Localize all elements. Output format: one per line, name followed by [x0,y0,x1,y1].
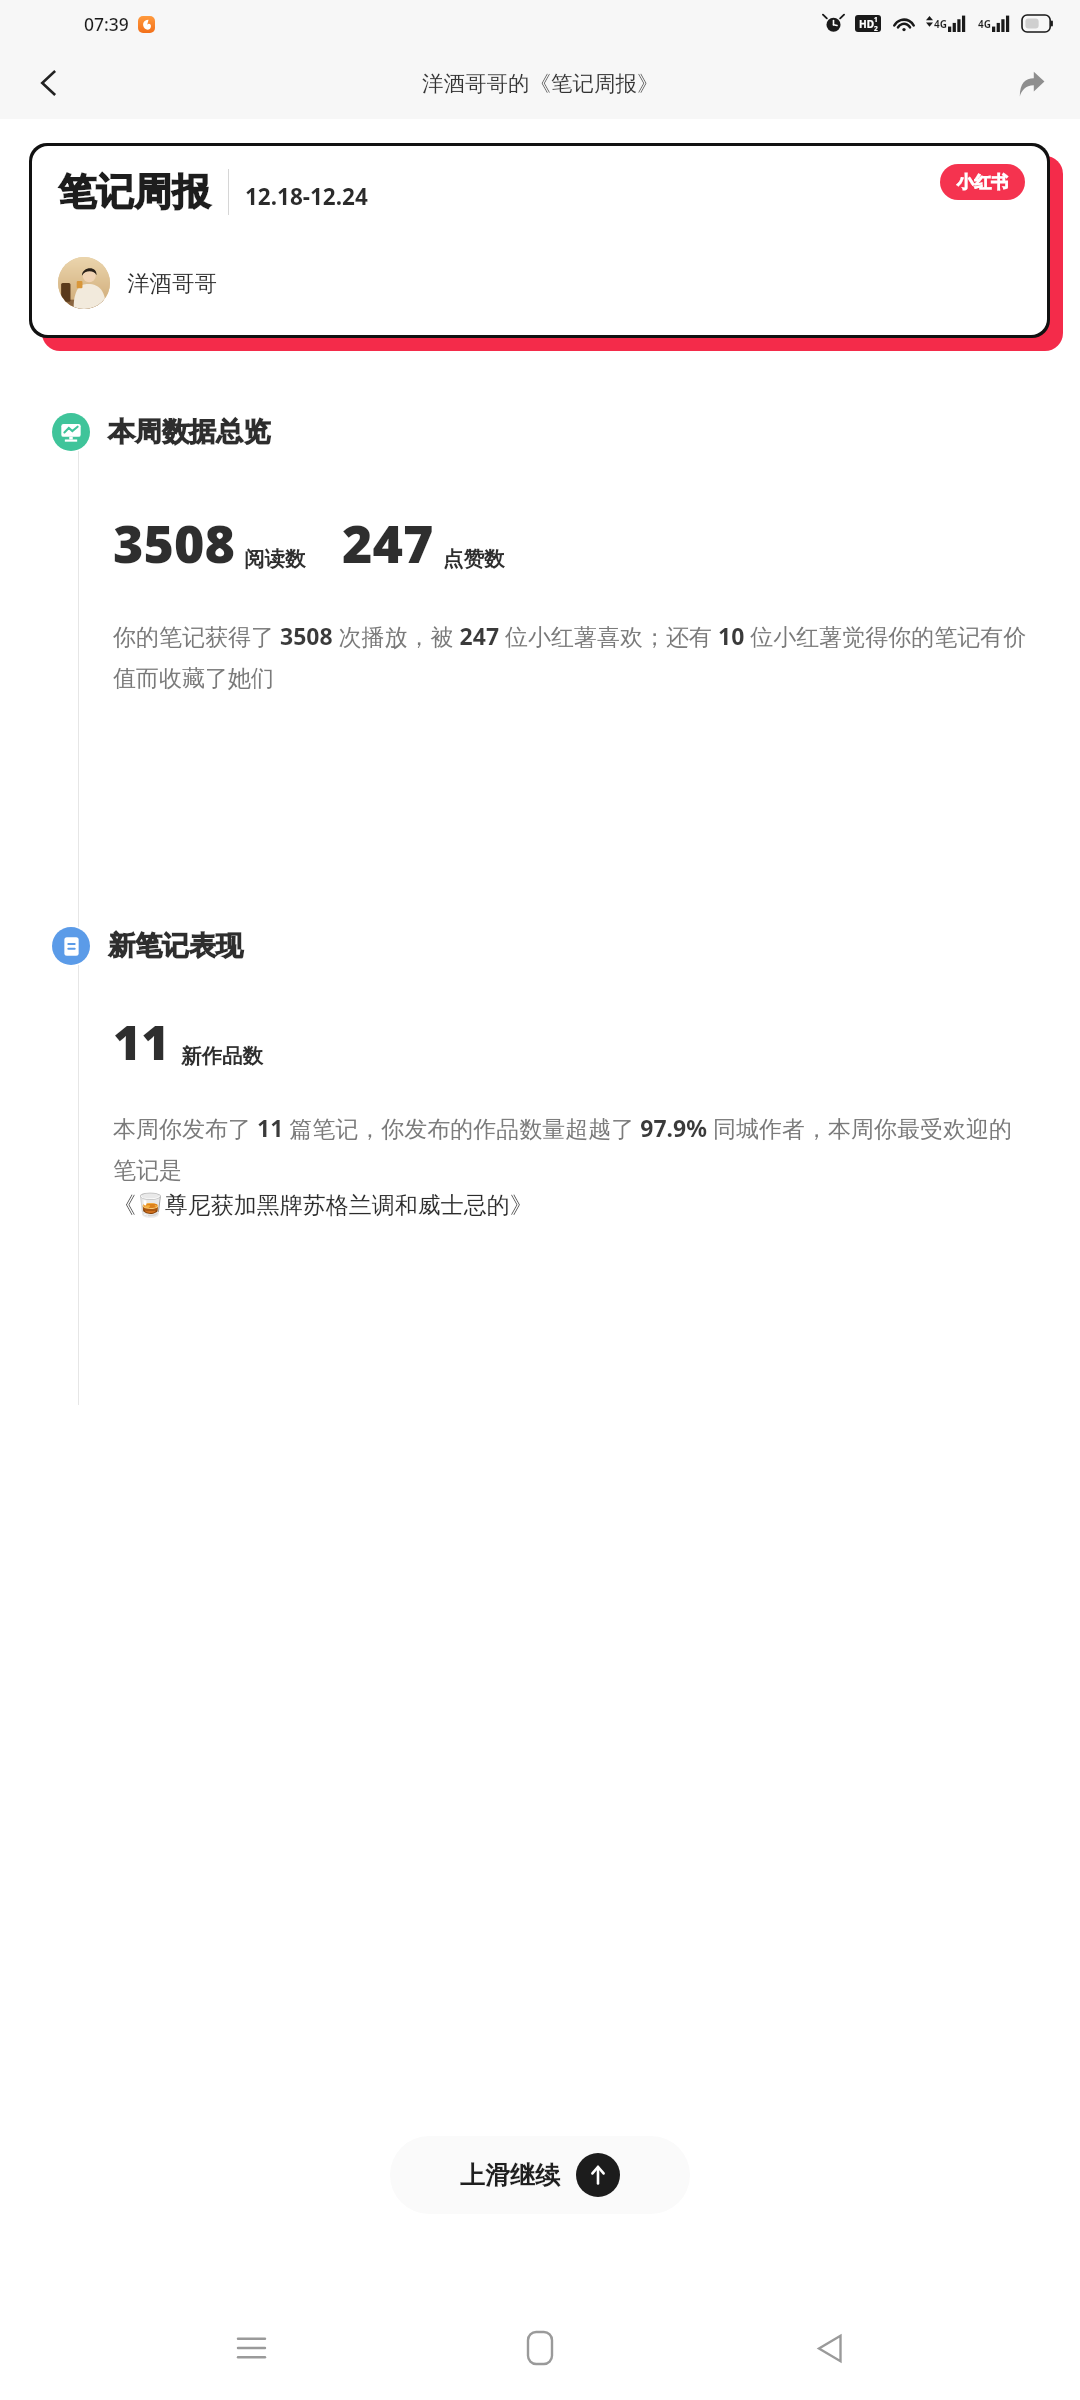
staticText: 你的笔记获得了 3508 次播放，被 247 位小红薯喜欢；还有 10 位小红薯… [113,620,1028,693]
button[interactable]: Home [502,2310,578,2386]
staticText: 点赞数 [443,546,505,572]
staticText: 新笔记表现 [108,929,243,963]
button[interactable]: 小红书 [940,164,1025,200]
staticText: 4G [934,17,947,31]
staticText: 3508 [113,507,235,578]
staticText: 洋酒哥哥 [127,269,217,297]
staticText: 洋酒哥哥的《笔记周报》 [422,70,659,97]
staticText: 1 [874,15,878,24]
staticText: 11 [113,1009,170,1074]
staticText: 小红书 [957,172,1008,193]
staticText: 上滑继续 [460,2160,560,2191]
staticText: 07:39 [84,12,129,36]
staticText: 4G [978,17,991,31]
staticText: HD [859,17,874,31]
staticText: 247 [342,507,434,578]
staticText: 2 [874,24,878,32]
button[interactable]: 上滑继续 [390,2136,690,2214]
staticText: 《🥃尊尼获加黑牌苏格兰调和威士忌的》 [113,1191,533,1220]
staticText: 阅读数 [244,546,306,572]
button[interactable]: 笔记周报 [32,146,1047,335]
button[interactable]: Share [1000,52,1062,114]
staticText: 笔记周报 [58,168,210,216]
staticText: 本周你发布了 11 篇笔记，你发布的作品数量超越了 97.9% 同城作者，本周你… [113,1112,1028,1185]
staticText: 12.18-12.24 [245,181,368,212]
button[interactable]: Back [791,2310,867,2386]
button[interactable]: Back [18,52,80,114]
staticText: 本周数据总览 [108,415,270,449]
staticText: 新作品数 [181,1043,263,1069]
button[interactable]: Recents [213,2310,289,2386]
